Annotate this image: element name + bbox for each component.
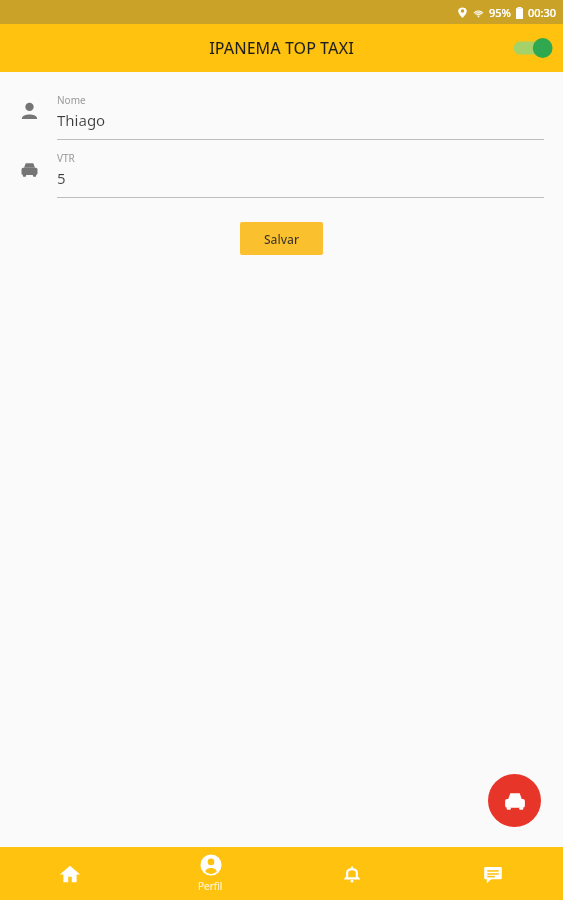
button[interactable]: Início: [0, 847, 140, 900]
staticText: Salvar: [264, 231, 299, 247]
staticText: Nome: [57, 93, 86, 107]
staticText: 95%: [489, 5, 511, 20]
staticText: Thiago: [57, 110, 106, 130]
button[interactable]: Nome: [0, 82, 563, 140]
staticText: IPANEMA TOP TAXI: [209, 37, 354, 59]
button[interactable]: Perfil: [140, 847, 281, 900]
button[interactable]: Notificações: [281, 847, 422, 900]
staticText: 5: [57, 168, 66, 188]
staticText: VTR: [57, 151, 75, 165]
button[interactable]: VTR: [0, 140, 563, 198]
button[interactable]: Disponível: [511, 33, 555, 63]
button[interactable]: Chamar táxi: [488, 774, 541, 827]
button[interactable]: Mensagens: [422, 847, 563, 900]
staticText: 00:30: [528, 5, 557, 20]
staticText: Perfil: [198, 879, 223, 893]
button[interactable]: Salvar: [240, 222, 323, 255]
